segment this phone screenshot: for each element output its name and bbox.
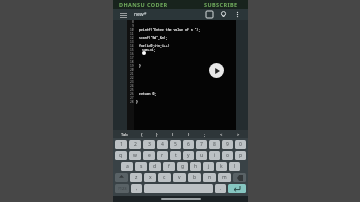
button[interactable]: g [177, 162, 188, 171]
button[interactable]: Key [115, 173, 128, 182]
button[interactable]: 7 [196, 140, 207, 149]
button[interactable]: h [190, 162, 201, 171]
staticText: 6 [187, 141, 190, 148]
staticText: < [220, 132, 223, 137]
button[interactable]: 5 [170, 140, 181, 149]
button[interactable]: Key [115, 184, 129, 193]
staticText: Tab [121, 132, 128, 137]
button[interactable]: . [215, 184, 226, 193]
staticText: 1 [120, 141, 123, 148]
button[interactable]: t [170, 151, 181, 160]
button[interactable]: i [209, 151, 220, 160]
button[interactable]: s [135, 162, 147, 171]
staticText: x [149, 174, 152, 181]
staticText: a [126, 163, 129, 170]
staticText: 17 [130, 56, 134, 60]
staticText: h [194, 163, 198, 170]
button[interactable]: e [143, 151, 155, 160]
staticText: j [208, 163, 210, 170]
button[interactable]: Menu [118, 10, 128, 20]
button[interactable]: 8 [209, 140, 220, 149]
staticText: 27 [130, 96, 134, 100]
button[interactable]: m [218, 173, 231, 182]
staticText: sum+=i; [142, 48, 156, 52]
staticText: t [175, 152, 177, 159]
button[interactable]: d [149, 162, 161, 171]
staticText: 14 [130, 44, 134, 48]
button[interactable]: 0 [235, 140, 246, 149]
button[interactable]: o [222, 151, 233, 160]
staticText: c [163, 174, 166, 181]
staticText: 16 [130, 52, 134, 56]
staticText: n [208, 174, 212, 181]
button[interactable]: Run [209, 63, 224, 78]
button[interactable]: k [216, 162, 227, 171]
button[interactable]: { [141, 132, 143, 137]
staticText: 13 [130, 40, 134, 44]
staticText: scanf("%d",&n); [139, 36, 168, 40]
button[interactable]: v [173, 173, 186, 182]
button[interactable]: a [121, 162, 133, 171]
button[interactable]: b [188, 173, 201, 182]
button[interactable]: j [203, 162, 214, 171]
staticText: return 0; [139, 92, 157, 96]
button[interactable]: > [237, 132, 240, 137]
button[interactable]: l [229, 162, 240, 171]
button[interactable]: z [130, 173, 142, 182]
staticText: z [135, 174, 138, 181]
staticText: 3 [148, 141, 151, 148]
button[interactable]: Enter [228, 184, 246, 193]
button[interactable]: 2 [129, 140, 141, 149]
button[interactable]: ( [172, 132, 174, 137]
button[interactable]: f [163, 162, 175, 171]
staticText: l [234, 163, 236, 170]
button[interactable]: q [115, 151, 127, 160]
button[interactable]: Key [233, 173, 246, 182]
button[interactable]: 3 [143, 140, 155, 149]
staticText: 10 [130, 28, 134, 32]
staticText: . [220, 185, 222, 192]
staticText: printf("Enter the value of n "); [139, 28, 201, 32]
button[interactable]: ) [188, 132, 190, 137]
button[interactable]: 9 [222, 140, 233, 149]
button[interactable]: c [158, 173, 171, 182]
button[interactable]: 6 [183, 140, 194, 149]
button[interactable]: y [183, 151, 194, 160]
staticText: 24 [130, 84, 134, 88]
staticText: 18 [130, 60, 134, 64]
staticText: e [148, 152, 151, 159]
staticText: { [141, 132, 143, 137]
staticText: i [214, 152, 216, 159]
staticText: o [226, 152, 230, 159]
staticText: > [237, 132, 240, 137]
button[interactable]: ; [204, 132, 206, 137]
staticText: 25 [130, 88, 134, 92]
staticText: v [178, 174, 181, 181]
staticText: , [136, 185, 138, 192]
button[interactable]: w [129, 151, 141, 160]
button[interactable]: Save [205, 10, 214, 19]
button[interactable]: u [196, 151, 207, 160]
staticText: } [139, 64, 141, 68]
staticText: ( [172, 132, 174, 137]
button[interactable]: x [144, 173, 156, 182]
button[interactable]: r [157, 151, 168, 160]
staticText: p [239, 152, 243, 159]
button[interactable]: 1 [115, 140, 127, 149]
button[interactable]: More options [233, 10, 242, 19]
button[interactable] [144, 184, 213, 193]
staticText: 12 [130, 36, 134, 40]
button[interactable]: n [203, 173, 216, 182]
button[interactable]: , [131, 184, 142, 193]
staticText: ; [204, 132, 206, 137]
button[interactable]: } [156, 132, 158, 137]
staticText: 5 [174, 141, 177, 148]
staticText: SUBSCRIBE [204, 1, 238, 8]
button[interactable]: p [235, 151, 246, 160]
button[interactable]: 4 [157, 140, 168, 149]
button[interactable]: Hint [219, 10, 228, 19]
staticText: 9 [226, 141, 229, 148]
button[interactable]: < [220, 132, 223, 137]
staticText: r [161, 152, 164, 159]
staticText: m [222, 174, 227, 181]
